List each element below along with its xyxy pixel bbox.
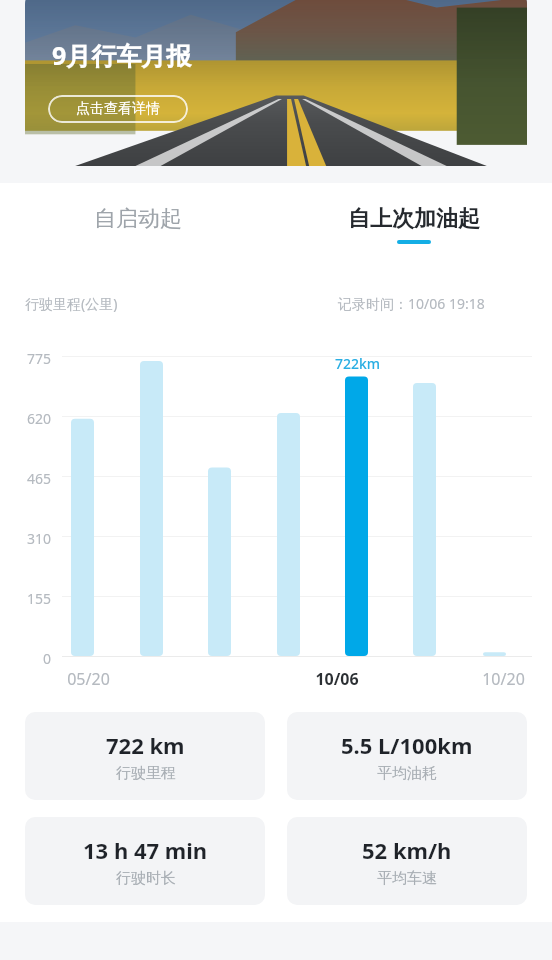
button[interactable]: 5.5 L/100km xyxy=(287,712,527,800)
button[interactable]: 13 h 47 min xyxy=(25,817,265,905)
staticText: 平均油耗 xyxy=(377,764,437,783)
staticText: 465 xyxy=(27,469,52,488)
staticText: 722 km xyxy=(106,730,185,760)
staticText: 05/20 xyxy=(67,668,110,690)
staticText: 点击查看详情 xyxy=(76,100,160,118)
button[interactable]: 722 km xyxy=(25,712,265,800)
staticText: 自上次加油起 xyxy=(348,205,480,233)
staticText: 310 xyxy=(27,529,52,548)
staticText: 平均车速 xyxy=(377,869,437,888)
staticText: 行驶时长 xyxy=(116,869,176,888)
staticText: 行驶里程 xyxy=(116,764,176,783)
staticText: 10/20 xyxy=(482,668,525,690)
staticText: 13 h 47 min xyxy=(83,835,208,865)
staticText: 52 km/h xyxy=(362,835,452,865)
button[interactable]: 52 km/h xyxy=(287,817,527,905)
staticText: 155 xyxy=(27,589,52,608)
staticText: 行驶里程(公里) xyxy=(25,294,118,313)
staticText: 620 xyxy=(27,409,52,428)
staticText: 9月行车月报 xyxy=(52,38,192,72)
button[interactable]: 点击查看详情 xyxy=(48,95,188,123)
staticText: 自启动起 xyxy=(94,205,182,233)
button[interactable]: 9月行车月报 xyxy=(25,0,527,166)
staticText: 记录时间：10/06 19:18 xyxy=(338,294,485,313)
button[interactable]: 自上次加油起 xyxy=(276,205,552,265)
staticText: 10/06 xyxy=(315,668,359,690)
button[interactable]: 自启动起 xyxy=(0,205,276,265)
staticText: 0 xyxy=(43,649,52,668)
staticText: 5.5 L/100km xyxy=(341,730,473,760)
staticText: 775 xyxy=(27,349,52,368)
staticText: 722km xyxy=(335,354,381,373)
